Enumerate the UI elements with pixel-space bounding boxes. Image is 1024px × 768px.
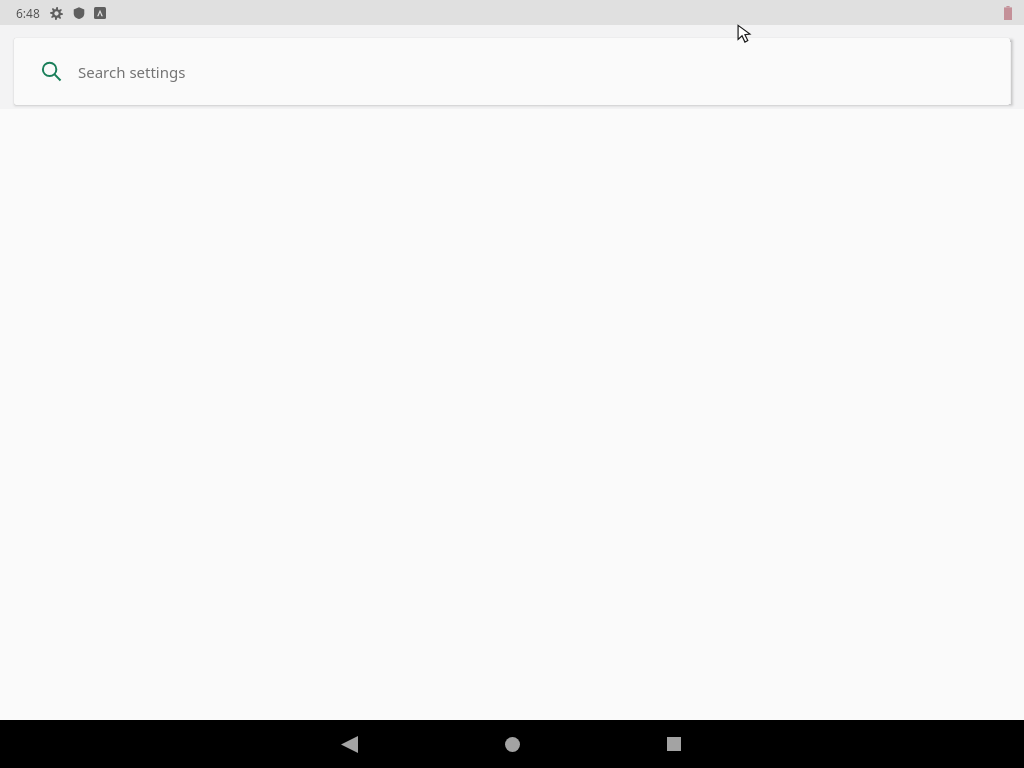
staticText: 6:48 [16,5,40,21]
staticText: Search settings [78,62,186,82]
button[interactable]: Back [325,720,373,768]
button[interactable]: Recent apps [650,720,698,768]
button[interactable]: Search settings [14,38,1010,105]
button[interactable]: Home [488,720,536,768]
